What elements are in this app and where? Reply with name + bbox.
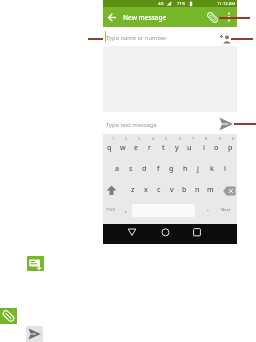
staticText: 71% <box>177 1 186 7</box>
button[interactable]: e <box>130 141 143 155</box>
button[interactable]: k <box>205 162 219 176</box>
button[interactable]: o <box>210 141 223 155</box>
button[interactable]: i <box>197 141 210 155</box>
staticText: z <box>131 185 135 195</box>
button[interactable]: f <box>151 162 165 176</box>
button[interactable]: q <box>103 141 116 155</box>
staticText: 9 <box>219 136 222 141</box>
button[interactable]: v <box>165 183 178 197</box>
staticText: h <box>183 164 188 174</box>
staticText: n <box>195 185 200 195</box>
button[interactable] <box>206 11 219 24</box>
staticText: 1 <box>112 136 115 141</box>
button[interactable]: x <box>139 183 152 197</box>
staticText: Next <box>221 207 231 213</box>
staticText: . <box>207 204 209 214</box>
staticText: 4 <box>152 136 155 141</box>
staticText: e <box>134 143 139 153</box>
button[interactable] <box>223 186 236 196</box>
staticText: 11:12 AM <box>217 1 236 7</box>
button[interactable] <box>107 13 117 22</box>
button[interactable] <box>0 308 17 324</box>
button[interactable]: Next <box>217 203 235 217</box>
staticText: p <box>228 143 233 153</box>
staticText: f <box>157 164 160 174</box>
staticText: 7 <box>192 136 195 141</box>
button[interactable]: a <box>110 162 124 176</box>
staticText: b <box>182 185 187 195</box>
staticText: 5 <box>165 136 168 141</box>
staticText: u <box>187 143 192 153</box>
button[interactable]: u <box>183 141 196 155</box>
staticText: Type text message <box>106 121 157 129</box>
staticText: 6 <box>179 136 182 141</box>
button[interactable]: c <box>152 183 165 197</box>
staticText: s <box>129 164 133 174</box>
staticText: c <box>157 185 161 195</box>
button[interactable]: w <box>116 141 129 155</box>
button[interactable] <box>219 117 234 131</box>
button[interactable]: ?123 <box>103 203 119 217</box>
button[interactable]: z <box>126 183 139 197</box>
button[interactable] <box>103 27 237 46</box>
staticText: m <box>207 185 214 195</box>
button[interactable]: t <box>157 141 170 155</box>
staticText: Type name or number <box>106 34 167 42</box>
button[interactable]: r <box>143 141 156 155</box>
staticText: ?123 <box>106 207 116 213</box>
staticText: 2 <box>125 136 128 141</box>
staticText: d <box>142 164 147 174</box>
button[interactable]: p <box>224 141 237 155</box>
button[interactable]: m <box>204 183 217 197</box>
staticText: 4G <box>158 1 164 7</box>
button[interactable]: y <box>170 141 183 155</box>
staticText: a <box>115 164 120 174</box>
staticText: g <box>169 164 174 174</box>
staticText: t <box>162 143 165 153</box>
button[interactable] <box>161 228 170 237</box>
button[interactable] <box>27 256 44 271</box>
staticText: v <box>170 185 174 195</box>
button[interactable] <box>226 11 232 23</box>
button[interactable] <box>103 7 237 27</box>
button[interactable] <box>219 33 232 45</box>
button[interactable]: , <box>120 203 132 217</box>
staticText: j <box>197 164 199 174</box>
staticText: k <box>210 164 214 174</box>
staticText: w <box>120 143 126 153</box>
button[interactable]: . <box>202 202 214 216</box>
staticText: l <box>224 164 226 174</box>
button[interactable]: l <box>218 162 232 176</box>
button[interactable]: g <box>164 162 178 176</box>
button[interactable]: j <box>191 162 205 176</box>
staticText: , <box>125 205 127 215</box>
button[interactable]: b <box>178 183 191 197</box>
staticText: o <box>214 143 219 153</box>
button[interactable] <box>127 228 137 237</box>
button[interactable]: s <box>124 162 138 176</box>
staticText: x <box>144 185 148 195</box>
staticText: 3 <box>138 136 141 141</box>
staticText: 8 <box>205 136 208 141</box>
button[interactable]: n <box>191 183 204 197</box>
button[interactable] <box>106 185 117 196</box>
staticText: q <box>107 143 112 153</box>
button[interactable] <box>193 228 201 237</box>
staticText: New message <box>123 13 167 22</box>
staticText: i <box>203 143 205 153</box>
staticText: y <box>175 143 179 153</box>
button[interactable]: h <box>178 162 192 176</box>
staticText: 0 <box>232 136 235 141</box>
button[interactable] <box>26 326 43 342</box>
button[interactable] <box>103 112 237 134</box>
button[interactable]: d <box>137 162 151 176</box>
staticText: r <box>148 143 151 153</box>
